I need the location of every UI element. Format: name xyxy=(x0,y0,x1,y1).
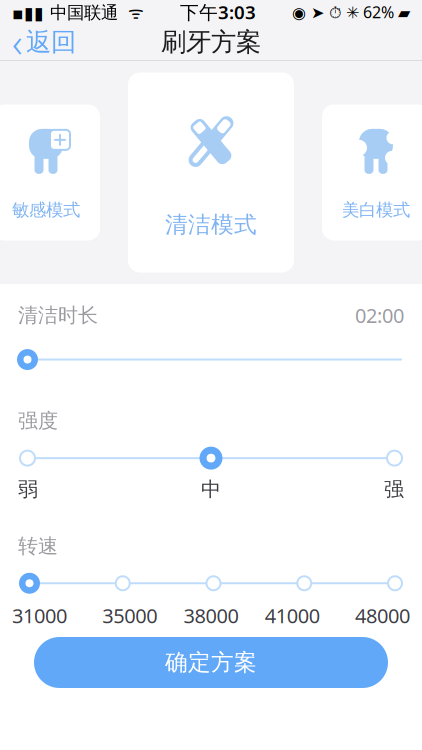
staticText: 清洁模式 xyxy=(165,211,257,238)
button[interactable]: 美白模式 xyxy=(322,104,422,240)
staticText: 返回 xyxy=(26,26,76,57)
staticText: ▪▮▮ 中国联通 ᯤ xyxy=(12,0,144,23)
staticText: 强度 xyxy=(18,409,58,433)
staticText: 强 xyxy=(384,477,404,502)
staticText: 转速 xyxy=(18,534,58,558)
staticText: 确定方案 xyxy=(165,649,257,676)
staticText: 41000 xyxy=(265,602,320,629)
staticText: 敏感模式 xyxy=(12,199,80,220)
staticText: 35000 xyxy=(102,602,157,629)
staticText: 31000 xyxy=(12,602,67,629)
staticText: 美白模式 xyxy=(342,199,410,220)
staticText: ◉ ➤ ⏱ ✳ 62% ▰ xyxy=(292,1,410,23)
staticText: 弱 xyxy=(18,477,38,502)
staticText: 48000 xyxy=(355,602,410,629)
button[interactable]: 清洁模式 xyxy=(128,72,294,272)
staticText: 38000 xyxy=(183,602,238,629)
button[interactable]: ‹ xyxy=(0,24,88,60)
button[interactable]: 确定方案 xyxy=(34,637,388,688)
staticText: 02:00 xyxy=(355,302,404,329)
staticText: ‹ xyxy=(12,15,23,68)
staticText: 下午3:03 xyxy=(180,0,256,24)
staticText: 刷牙方案 xyxy=(161,26,261,57)
button[interactable]: 敏感模式 xyxy=(0,104,100,240)
staticText: 清洁时长 xyxy=(18,303,98,328)
staticText: 中 xyxy=(201,477,221,502)
